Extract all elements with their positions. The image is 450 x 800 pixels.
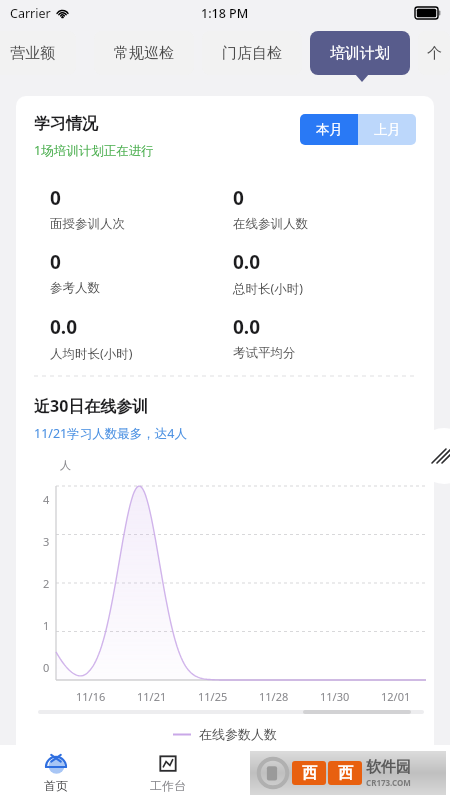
other: 我的	[382, 752, 406, 776]
staticText: 11/21	[137, 689, 167, 704]
other: 门店	[269, 752, 293, 776]
button[interactable]: 首页	[0, 745, 112, 800]
button[interactable]: 常规巡检	[94, 31, 194, 75]
staticText: 软件园	[366, 758, 411, 777]
staticText: 营业额	[10, 44, 55, 63]
button[interactable]: Quick actions	[416, 428, 450, 484]
staticText: CR173.COM	[366, 777, 411, 788]
staticText: 1场培训计划正在进行	[34, 142, 154, 159]
staticText: 人均时长(小时)	[50, 345, 133, 362]
staticText: 1:18 PM	[201, 5, 249, 22]
button[interactable]: 门店自检	[202, 31, 302, 75]
staticText: 本月	[316, 121, 343, 138]
staticText: 0	[43, 660, 50, 675]
button[interactable]: 我的	[337, 745, 450, 800]
staticText: 2	[43, 576, 50, 591]
staticText: 总时长(小时)	[233, 280, 304, 297]
staticText: 11/25	[198, 689, 228, 704]
button[interactable]: 本月	[300, 114, 358, 145]
staticText: 我的	[382, 778, 406, 793]
staticText: 12/01	[381, 689, 411, 704]
button[interactable]: 上月	[358, 114, 416, 145]
staticText: 0.0	[50, 314, 78, 340]
staticText: 近30日在线参训	[34, 395, 149, 417]
staticText: 西	[338, 764, 353, 783]
staticText: 学习情况	[34, 114, 98, 134]
staticText: 0.0	[233, 249, 261, 275]
staticText: 11/30	[320, 689, 350, 704]
staticText: 上月	[374, 121, 401, 138]
staticText: 常规巡检	[114, 44, 174, 63]
staticText: 西	[302, 764, 317, 783]
staticText: 11/28	[259, 689, 289, 704]
button[interactable]: 个	[418, 31, 450, 75]
staticText: 培训计划	[330, 44, 390, 63]
staticText: 考试平均分	[233, 345, 296, 361]
staticText: 工作台	[150, 778, 186, 793]
staticText: 11/21学习人数最多，达4人	[34, 425, 187, 442]
staticText: Carrier	[10, 5, 51, 22]
staticText: 在线参数人数	[199, 726, 277, 742]
staticText: 0	[50, 249, 61, 275]
button[interactable]: 工作台	[112, 745, 224, 800]
staticText: 11/16	[76, 689, 106, 704]
staticText: 3	[43, 534, 50, 549]
staticText: 参考人数	[50, 280, 100, 296]
staticText: 面授参训人次	[50, 216, 125, 232]
staticText: 个	[427, 44, 442, 63]
staticText: 门店自检	[222, 44, 282, 63]
staticText: 人	[60, 458, 71, 472]
staticText: 在线参训人数	[233, 216, 308, 232]
staticText: 门店	[269, 778, 293, 793]
staticText: 0.0	[233, 314, 261, 340]
button[interactable]: 门店	[224, 745, 337, 800]
staticText: 0	[50, 185, 61, 211]
staticText: 0	[233, 185, 244, 211]
other: 工作台	[156, 752, 180, 776]
button[interactable]: 培训计划	[310, 31, 410, 75]
staticText: 4	[43, 492, 50, 507]
staticText: 首页	[44, 778, 68, 793]
button[interactable]: 营业额	[0, 31, 76, 75]
other: 首页	[44, 752, 68, 776]
staticText: 1	[43, 618, 50, 633]
